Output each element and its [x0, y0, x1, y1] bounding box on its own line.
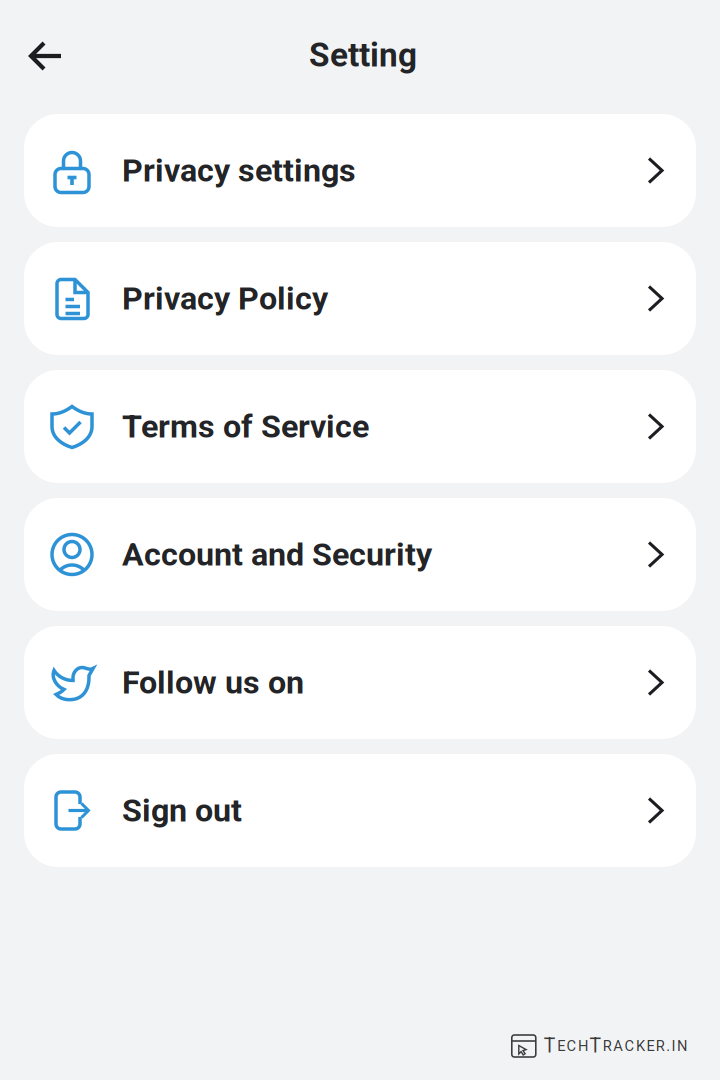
staticText: K: [636, 1037, 645, 1055]
staticText: C: [567, 1037, 577, 1055]
staticText: N: [677, 1037, 687, 1055]
staticText: Account and Security: [122, 536, 432, 573]
staticText: R: [603, 1037, 612, 1055]
staticText: E: [557, 1037, 565, 1055]
staticText: Privacy Policy: [122, 280, 328, 317]
staticText: T: [544, 1035, 556, 1057]
button[interactable]: Sign out: [24, 754, 696, 867]
staticText: E: [646, 1037, 654, 1055]
button[interactable]: Account and Security: [24, 498, 696, 611]
staticText: T: [589, 1035, 601, 1057]
staticText: Sign out: [122, 792, 242, 829]
button[interactable]: Privacy Policy: [24, 242, 696, 355]
staticText: H: [578, 1037, 588, 1055]
staticText: A: [613, 1037, 623, 1055]
staticText: Setting: [309, 35, 417, 75]
staticText: Terms of Service: [122, 408, 369, 445]
button[interactable]: Follow us on: [24, 626, 696, 739]
staticText: C: [625, 1037, 635, 1055]
staticText: Follow us on: [122, 664, 304, 701]
staticText: Privacy settings: [122, 152, 356, 189]
staticText: I: [672, 1037, 676, 1055]
button[interactable]: Terms of Service: [24, 370, 696, 483]
button[interactable]: Back: [18, 32, 74, 82]
staticText: .: [666, 1037, 670, 1055]
staticText: R: [656, 1037, 665, 1055]
button[interactable]: Privacy settings: [24, 114, 696, 227]
